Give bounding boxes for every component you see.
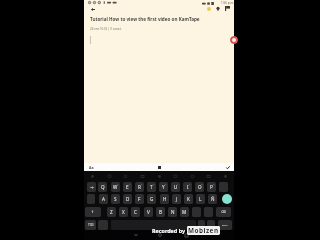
button[interactable]: X [119,207,128,217]
button[interactable]: Pin note [213,4,223,13]
staticText: Y [162,184,165,190]
button[interactable]: M [180,207,189,217]
staticText: ⇧ [91,210,95,214]
button[interactable]: Keyboard option [138,171,147,181]
staticText: F [138,196,141,202]
staticText: 9 [201,182,203,185]
staticText: 5 [153,182,155,185]
staticText: I [187,184,189,190]
staticText: G [150,196,154,202]
button[interactable]: Shift [85,207,101,217]
staticText: M [182,209,187,215]
button[interactable]: Text style [87,163,96,171]
button[interactable]: Keyboard option [171,171,180,181]
button[interactable]: Keyboard option [88,171,97,181]
button[interactable]: K [184,194,193,204]
button[interactable]: Backspace [216,207,231,217]
button[interactable]: Back [87,5,99,14]
staticText: S [114,196,117,202]
staticText: Ñ [211,196,215,202]
button[interactable]: Back [131,231,141,239]
button[interactable]: Symbols [85,220,96,230]
staticText: PLUS [222,224,228,227]
staticText: X [122,209,125,215]
button[interactable]: R [135,182,144,192]
staticText: Aa [89,165,94,170]
staticText: U [174,184,178,190]
staticText: 4 [141,182,143,185]
staticText: 0 [213,182,215,185]
button[interactable]: Period [204,207,213,217]
staticText: 8 [189,182,191,185]
button[interactable]: Keyboard option [121,171,130,181]
staticText: R [138,184,141,190]
button[interactable]: N [168,207,177,217]
staticText: 1:56 p.m. [221,1,234,5]
button[interactable]: Q [98,182,107,192]
button[interactable]: Comma [198,220,205,230]
staticText: A [102,196,105,202]
button[interactable]: Flag [222,4,232,13]
button[interactable]: C [131,207,140,217]
button[interactable]: Keyboard option [221,171,230,181]
button[interactable]: Keyboard option [155,171,164,181]
button[interactable]: E [123,182,132,192]
button[interactable]: U [171,182,180,192]
button[interactable]: Emoji [98,220,108,230]
button[interactable]: H [160,194,169,204]
button[interactable]: Keyboard option [204,171,213,181]
button[interactable]: Keyboard option [188,171,197,181]
button[interactable]: J [172,194,181,204]
button[interactable]: Insert image [155,163,164,171]
staticText: W [113,184,118,190]
staticText: Z [110,209,113,215]
button[interactable]: Voice input [87,194,95,204]
button[interactable]: Keyboard option [105,171,114,181]
button[interactable]: Recent apps [181,231,191,239]
button[interactable]: T [147,182,156,192]
staticText: C [134,209,137,215]
button[interactable]: O [195,182,204,192]
button[interactable]: F [135,194,144,204]
staticText: T [150,184,153,190]
button[interactable]: Send [222,194,232,204]
button[interactable]: Home [155,231,165,239]
button[interactable]: Highlight colour [204,4,214,13]
staticText: J [176,196,178,202]
button[interactable]: Delete [219,182,228,192]
button[interactable]: V [144,207,153,217]
button[interactable]: Tab [87,182,96,192]
staticText: 6 [165,182,167,185]
button[interactable]: Period [207,220,215,230]
staticText: ?123 [88,223,94,227]
button[interactable]: D [123,194,132,204]
button[interactable]: I [183,182,192,192]
button[interactable]: Y [159,182,168,192]
button[interactable]: Z [107,207,116,217]
button[interactable]: B [156,207,165,217]
button[interactable]: Comma [192,207,201,217]
staticText: Recorded by [152,227,186,234]
button[interactable]: Ñ [208,194,217,204]
button[interactable]: Recording control [230,36,238,44]
button[interactable]: W [111,182,120,192]
staticText: L [199,196,202,202]
staticText: 3 [129,182,131,185]
staticText: Tutorial How to view the first video on … [90,16,200,22]
staticText: ⌫ [221,210,226,214]
staticText: V [147,209,150,215]
staticText: 2 [117,182,119,185]
staticText: O [198,184,202,190]
button[interactable]: L [196,194,205,204]
staticText: → [90,185,94,190]
staticText: , [201,223,202,228]
button[interactable]: S [111,194,120,204]
button[interactable]: Done [223,163,232,171]
button[interactable]: A [99,194,108,204]
button[interactable]: G [147,194,156,204]
button[interactable]: Enter [218,220,232,230]
staticText: 1 [104,182,106,185]
staticText: D [126,196,130,202]
button[interactable]: Space [111,220,196,230]
button[interactable]: P [207,182,216,192]
